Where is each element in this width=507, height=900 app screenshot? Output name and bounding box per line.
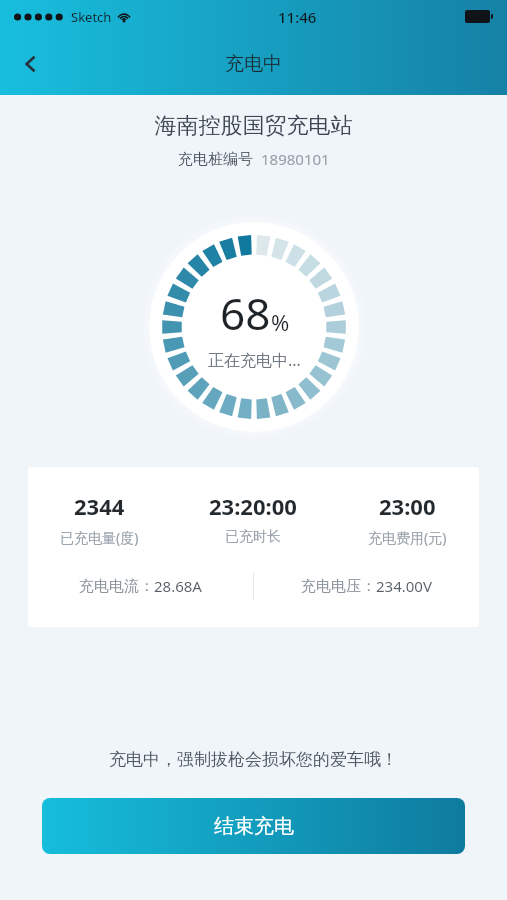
staticText: 正在充电中...: [208, 349, 301, 371]
staticText: 海南控股国贸充电站: [0, 112, 507, 140]
button[interactable]: Back: [0, 33, 62, 95]
staticText: 充电电压：: [301, 577, 376, 596]
staticText: 234.00V: [376, 576, 432, 596]
staticText: 充电电流：: [79, 577, 154, 596]
staticText: Sketch: [71, 8, 112, 26]
staticText: 11:46: [278, 7, 317, 27]
button[interactable]: 结束充电: [42, 798, 465, 854]
staticText: 已充电量(度): [60, 528, 139, 547]
staticText: %: [271, 307, 290, 337]
staticText: 已充时长: [225, 528, 281, 546]
staticText: 充电桩编号: [178, 150, 253, 169]
staticText: 18980101: [261, 149, 330, 169]
staticText: 28.68A: [154, 576, 202, 596]
staticText: 23:20:00: [209, 491, 297, 521]
staticText: 充电费用(元): [368, 528, 447, 547]
staticText: 23:00: [379, 491, 436, 521]
staticText: 2344: [74, 491, 125, 521]
staticText: 68: [220, 283, 271, 343]
staticText: 充电中: [225, 52, 282, 76]
staticText: 充电中，强制拔枪会损坏您的爱车哦！: [0, 749, 507, 770]
staticText: 结束充电: [214, 814, 294, 839]
